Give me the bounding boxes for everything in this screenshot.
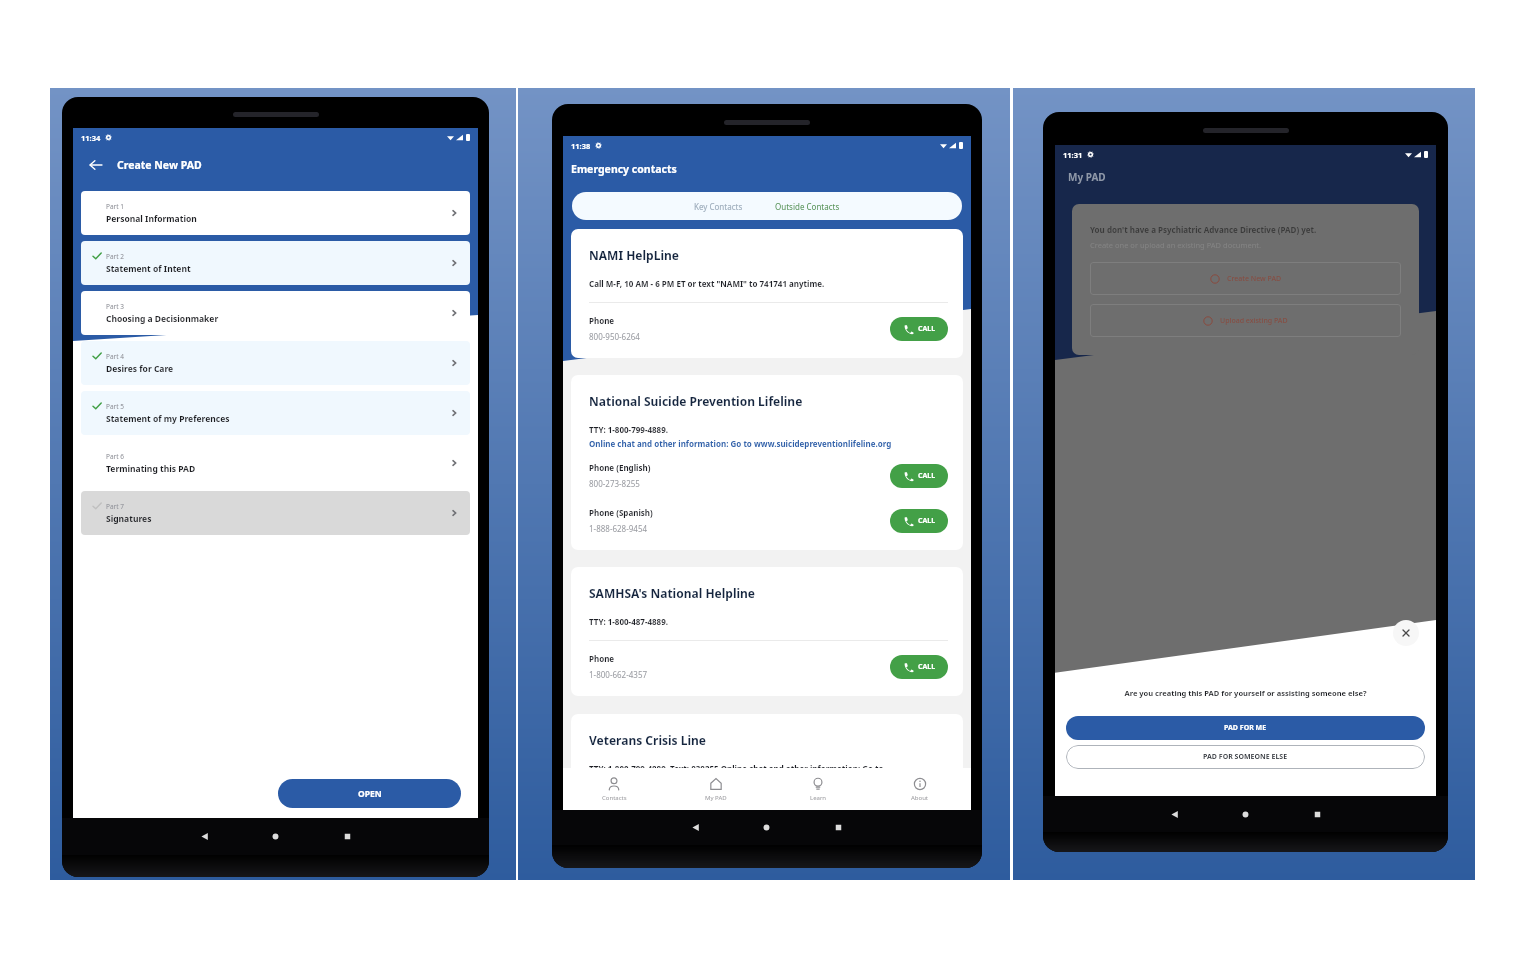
- button[interactable]: Close: [1393, 620, 1419, 646]
- button[interactable]: CALL: [890, 464, 948, 488]
- button[interactable]: Home: [270, 831, 281, 842]
- staticText: Create New PAD: [1227, 274, 1282, 284]
- staticText: Personal Information: [106, 213, 197, 225]
- button[interactable]: Contacts: [563, 768, 665, 810]
- staticText: Phone: [589, 315, 615, 326]
- staticText: About: [911, 794, 929, 802]
- button[interactable]: Upload existing PAD: [1090, 304, 1401, 337]
- staticText: CALL: [918, 662, 936, 672]
- staticText: CALL: [918, 471, 936, 481]
- button[interactable]: Back: [87, 156, 105, 174]
- staticText: 11:38: [571, 141, 591, 151]
- staticText: 800-273-8255: [589, 478, 640, 489]
- button[interactable]: Back: [1169, 809, 1180, 820]
- staticText: TTY: 1-800-487-4889.: [589, 616, 668, 627]
- button[interactable]: Back: [199, 831, 210, 842]
- button[interactable]: Part 3: [81, 291, 470, 335]
- staticText: Upload existing PAD: [1220, 316, 1288, 326]
- staticText: Learn: [810, 794, 827, 802]
- button[interactable]: Key Contacts: [678, 192, 759, 220]
- button[interactable]: PAD FOR ME: [1066, 716, 1425, 740]
- button[interactable]: My PAD: [665, 768, 767, 810]
- button[interactable]: Learn: [767, 768, 869, 810]
- button[interactable]: Recent apps: [342, 831, 353, 842]
- staticText: Outside Contacts: [775, 201, 840, 212]
- button[interactable]: Part 6: [81, 441, 470, 485]
- staticText: 11:34: [81, 133, 101, 143]
- button[interactable]: OPEN: [278, 779, 461, 808]
- button[interactable]: PAD FOR SOMEONE ELSE: [1066, 745, 1425, 769]
- button[interactable]: Part 1: [81, 191, 470, 235]
- staticText: Signatures: [106, 513, 152, 525]
- button[interactable]: Part 5: [81, 391, 470, 435]
- button[interactable]: Home: [761, 822, 772, 833]
- button[interactable]: Create New PAD: [1090, 262, 1401, 295]
- staticText: Terminating this PAD: [106, 463, 196, 475]
- staticText: SAMHSA's National Helpline: [589, 585, 756, 601]
- staticText: My PAD: [705, 794, 727, 802]
- staticText: CALL: [918, 516, 936, 526]
- staticText: PAD FOR ME: [1224, 723, 1267, 733]
- staticText: Part 1: [106, 202, 125, 211]
- button[interactable]: Recent apps: [1312, 809, 1323, 820]
- staticText: 11:31: [1063, 150, 1083, 160]
- staticText: Emergency contacts: [571, 162, 677, 176]
- staticText: Online chat and other information: Go to…: [589, 438, 892, 449]
- button[interactable]: Part 2: [81, 241, 470, 285]
- staticText: My PAD: [1068, 170, 1106, 184]
- button[interactable]: About: [869, 768, 971, 810]
- staticText: Part 6: [106, 452, 125, 461]
- button[interactable]: Outside Contacts: [759, 192, 856, 220]
- staticText: Phone: [589, 653, 615, 664]
- staticText: NAMI HelpLine: [589, 247, 679, 263]
- staticText: Create New PAD: [117, 158, 202, 172]
- staticText: You don't have a Psychiatric Advance Dir…: [1090, 224, 1317, 235]
- staticText: Part 4: [106, 352, 125, 361]
- staticText: National Suicide Prevention Lifeline: [589, 393, 803, 409]
- button[interactable]: Part 4: [81, 341, 470, 385]
- button[interactable]: Recent apps: [833, 822, 844, 833]
- staticText: 1-800-662-4357: [589, 669, 648, 680]
- staticText: 1-888-628-9454: [589, 523, 648, 534]
- staticText: TTY: 1-800-799-4889.: [589, 424, 668, 435]
- button[interactable]: CALL: [890, 509, 948, 533]
- staticText: Statement of my Preferences: [106, 413, 230, 425]
- staticText: Choosing a Decisionmaker: [106, 313, 219, 325]
- button[interactable]: Part 7: [81, 491, 470, 535]
- staticText: OPEN: [358, 788, 382, 800]
- staticText: PAD FOR SOMEONE ELSE: [1203, 752, 1288, 762]
- button[interactable]: Back: [690, 822, 701, 833]
- staticText: Part 7: [106, 502, 125, 511]
- staticText: Part 5: [106, 402, 125, 411]
- button[interactable]: CALL: [890, 655, 948, 679]
- staticText: Statement of Intent: [106, 263, 191, 275]
- staticText: Phone (English): [589, 462, 651, 473]
- staticText: Create one or upload an existing PAD doc…: [1090, 240, 1262, 250]
- staticText: 800-950-6264: [589, 331, 640, 342]
- staticText: Contacts: [602, 794, 627, 802]
- staticText: Part 2: [106, 252, 125, 261]
- staticText: Call M-F, 10 AM - 6 PM ET or text "NAMI"…: [589, 278, 825, 289]
- staticText: TTY: 1-800-799-4889. Text: 838255 Online…: [589, 763, 884, 774]
- staticText: CALL: [918, 324, 936, 334]
- staticText: Desires for Care: [106, 363, 174, 375]
- staticText: Veterans Crisis Line: [589, 732, 707, 748]
- button[interactable]: CALL: [890, 317, 948, 341]
- button[interactable]: Home: [1240, 809, 1251, 820]
- staticText: Phone (Spanish): [589, 507, 653, 518]
- staticText: Are you creating this PAD for yourself o…: [1066, 688, 1425, 698]
- staticText: Key Contacts: [694, 201, 743, 212]
- staticText: Part 3: [106, 302, 125, 311]
